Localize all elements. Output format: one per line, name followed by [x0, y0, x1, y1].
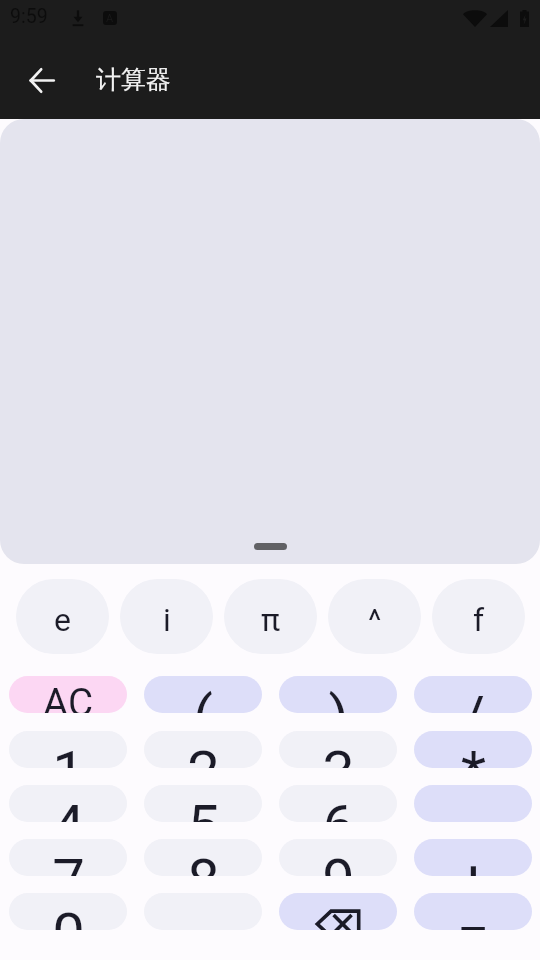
staticText: 计算器 [96, 64, 171, 95]
staticText: 4 [52, 792, 85, 822]
staticText: + [457, 846, 490, 876]
button[interactable]: 9 [279, 839, 397, 876]
button[interactable]: 6 [279, 785, 397, 822]
button[interactable]: 4 [9, 785, 127, 822]
button[interactable]: 2 [144, 731, 262, 768]
button[interactable]: 8 [144, 839, 262, 876]
button[interactable]: ^ [328, 579, 421, 654]
button[interactable]: - [414, 785, 532, 822]
button[interactable]: i [120, 579, 213, 654]
button[interactable]: + [414, 839, 532, 876]
staticText: 3 [322, 738, 355, 768]
staticText: 9:59 [10, 5, 48, 28]
staticText: A [106, 12, 114, 25]
staticText: 1 [52, 738, 85, 768]
button[interactable]: 3 [279, 731, 397, 768]
staticText: 5 [187, 792, 220, 822]
button[interactable]: Back [18, 56, 66, 104]
button[interactable]: Backspace [279, 893, 397, 930]
staticText: / [461, 683, 485, 713]
staticText: f [473, 601, 485, 639]
button[interactable]: 5 [144, 785, 262, 822]
button[interactable]: = [414, 893, 532, 930]
staticText: 7 [52, 846, 85, 876]
button[interactable]: ( [144, 676, 262, 713]
button[interactable]: e [16, 579, 109, 654]
staticText: i [163, 601, 171, 639]
button[interactable]: 0 [9, 893, 127, 930]
staticText: ^ [368, 601, 382, 639]
button[interactable]: * [414, 731, 532, 768]
staticText: 6 [322, 792, 355, 822]
staticText: * [461, 738, 486, 768]
staticText: ) [328, 683, 349, 713]
button[interactable]: f [432, 579, 525, 654]
button[interactable]: 7 [9, 839, 127, 876]
staticText: = [457, 900, 489, 930]
staticText: ( [193, 683, 213, 713]
staticText: AC [43, 680, 93, 713]
button[interactable]: AC [9, 676, 127, 713]
button[interactable]: / [414, 676, 532, 713]
staticText: π [261, 601, 281, 639]
staticText: 0 [52, 900, 85, 930]
button[interactable]: 1 [9, 731, 127, 768]
button[interactable]: π [224, 579, 317, 654]
staticText: 9 [322, 846, 355, 876]
staticText: e [54, 601, 71, 639]
staticText: 8 [187, 846, 220, 876]
button[interactable]: ) [279, 676, 397, 713]
staticText: 2 [187, 738, 220, 768]
